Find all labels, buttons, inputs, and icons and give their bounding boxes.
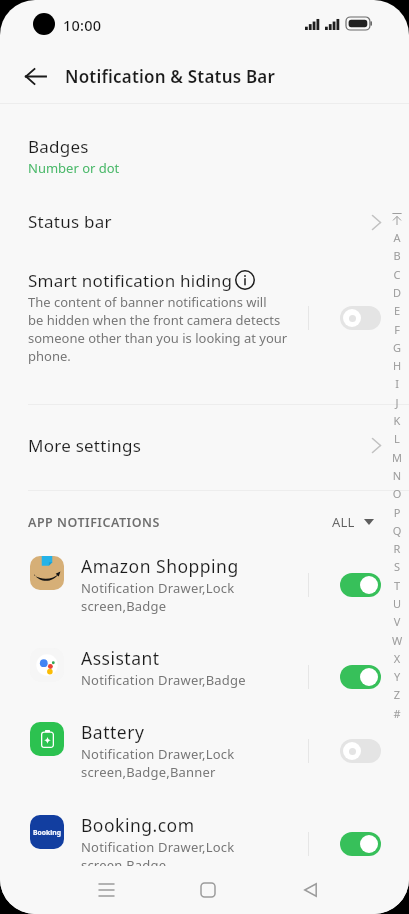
- staticText: L: [389, 431, 405, 446]
- staticText: Badges: [28, 135, 89, 158]
- staticText: D: [389, 285, 405, 300]
- staticText: P: [389, 505, 405, 520]
- staticText: screen,Badge,Banner: [81, 763, 216, 781]
- staticText: 10:00: [63, 15, 102, 35]
- staticText: Status bar: [28, 210, 112, 233]
- staticText: Smart notification hiding: [28, 269, 233, 292]
- staticText: H: [389, 358, 405, 373]
- staticText: X: [389, 651, 405, 666]
- staticText: Notification Drawer,Lock: [81, 745, 235, 763]
- button[interactable]: More settings: [0, 420, 409, 464]
- staticText: W: [389, 633, 405, 648]
- button[interactable]: Switch on: [340, 832, 381, 856]
- staticText: R: [389, 541, 405, 556]
- staticText: APP NOTIFICATIONS: [28, 514, 160, 531]
- staticText: Notification Drawer,Badge: [81, 671, 246, 689]
- button[interactable]: Switch on: [340, 665, 381, 689]
- staticText: S: [389, 559, 405, 574]
- staticText: N: [389, 468, 405, 483]
- button[interactable]: Recent apps: [78, 866, 134, 914]
- staticText: U: [389, 596, 405, 611]
- button[interactable]: Home: [180, 866, 236, 914]
- staticText: #: [389, 706, 405, 721]
- staticText: F: [389, 322, 405, 337]
- staticText: E: [389, 303, 405, 318]
- staticText: G: [389, 340, 405, 355]
- button[interactable]: Amazon Shopping: [0, 547, 409, 639]
- button[interactable]: Switch off: [340, 306, 381, 330]
- staticText: K: [389, 413, 405, 428]
- staticText: T: [389, 578, 405, 593]
- staticText: Q: [389, 523, 405, 538]
- staticText: Notification Drawer,Lock: [81, 579, 235, 597]
- button[interactable]: Status bar: [0, 196, 409, 240]
- staticText: A: [389, 230, 405, 245]
- staticText: screen,Badge: [81, 597, 167, 615]
- staticText: Assistant: [81, 646, 160, 670]
- staticText: Number or dot: [28, 159, 120, 177]
- staticText: Notification Drawer,Lock: [81, 838, 235, 856]
- staticText: M: [389, 450, 405, 465]
- staticText: C: [389, 267, 405, 282]
- staticText: be hidden when the front camera detects: [28, 311, 281, 329]
- staticText: B: [389, 248, 405, 263]
- staticText: More settings: [28, 434, 142, 457]
- staticText: screen,Badge: [81, 856, 167, 874]
- staticText: Booking: [33, 828, 61, 837]
- button[interactable]: Booking: [0, 806, 409, 898]
- button[interactable]: Back: [13, 54, 58, 99]
- staticText: Y: [389, 669, 405, 684]
- staticText: Notification & Status Bar: [65, 65, 276, 88]
- staticText: phone.: [28, 347, 71, 365]
- button[interactable]: Switch off: [340, 739, 381, 763]
- button[interactable]: Assistant: [0, 639, 409, 713]
- staticText: someone other than you is looking at you…: [28, 329, 288, 347]
- staticText: Battery: [81, 720, 145, 744]
- staticText: J: [389, 395, 405, 410]
- staticText: I: [389, 376, 405, 391]
- staticText: ALL: [332, 513, 355, 531]
- staticText: The content of banner notifications will: [28, 293, 267, 311]
- button[interactable]: Battery: [0, 713, 409, 805]
- staticText: Booking.com: [81, 813, 195, 837]
- staticText: O: [389, 486, 405, 501]
- button[interactable]: Switch on: [340, 573, 381, 597]
- button[interactable]: Smart notification hiding: [0, 260, 409, 380]
- staticText: V: [389, 614, 405, 629]
- staticText: Amazon Shopping: [81, 554, 239, 578]
- button[interactable]: ALL: [326, 507, 380, 537]
- button[interactable]: Badges: [0, 126, 409, 186]
- button[interactable]: Back: [282, 866, 338, 914]
- staticText: Z: [389, 687, 405, 702]
